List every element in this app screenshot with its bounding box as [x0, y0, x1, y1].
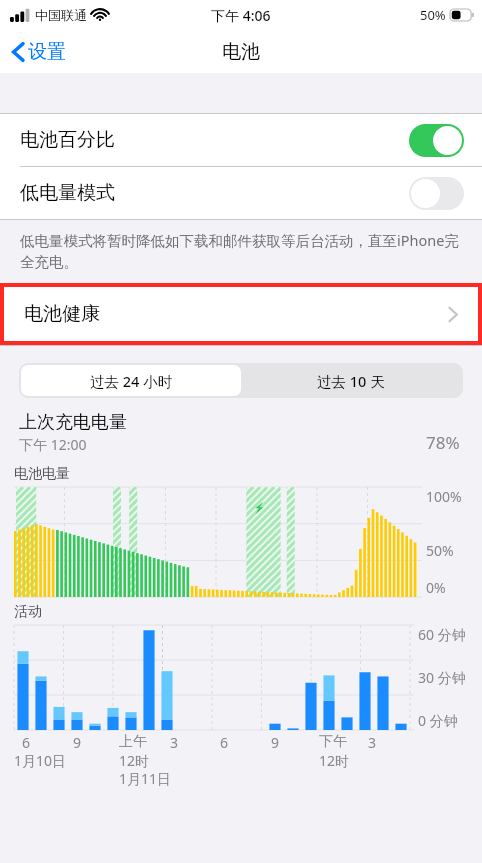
staticText: 低电量模式	[20, 181, 115, 205]
button[interactable]: 电池百分比	[0, 114, 482, 166]
staticText: 3	[368, 733, 377, 752]
staticText: 12时	[319, 751, 350, 770]
staticText: 下午 12:00	[19, 435, 87, 454]
button[interactable]: 低电量模式	[409, 177, 464, 210]
staticText: 9	[73, 733, 82, 752]
staticText: 中国联通	[35, 7, 87, 23]
staticText: 下午	[319, 733, 347, 751]
button[interactable]: 过去 10 天	[241, 365, 461, 396]
staticText: 60 分钟	[418, 625, 466, 644]
staticText: 12时	[119, 751, 150, 770]
staticText: 30 分钟	[418, 668, 466, 687]
staticText: 3	[170, 733, 179, 752]
staticText: 1月11日	[119, 769, 172, 788]
staticText: 50%	[426, 541, 454, 560]
button[interactable]: 过去 24 小时	[21, 365, 241, 396]
button[interactable]: 电池健康	[4, 287, 478, 341]
staticText: 78%	[426, 431, 460, 454]
staticText: 活动	[14, 603, 42, 621]
staticText: 1月10日	[14, 751, 67, 770]
staticText: 上次充电电量	[19, 411, 127, 434]
staticText: 6	[220, 733, 229, 752]
staticText: 过去 10 天	[317, 371, 385, 391]
staticText: 100%	[426, 487, 462, 506]
staticText: 0 分钟	[418, 711, 458, 730]
staticText: 设置	[28, 40, 66, 64]
button[interactable]: 设置	[8, 36, 70, 68]
staticText: 9	[271, 733, 280, 752]
staticText: 低电量模式将暂时降低如下载和邮件获取等后台活动，直至iPhone完全充电。	[20, 230, 460, 271]
staticText: 0%	[426, 578, 446, 597]
staticText: 电池百分比	[20, 128, 115, 152]
button[interactable]: 低电量模式	[0, 167, 482, 219]
staticText: 下午 4:06	[211, 6, 271, 25]
staticText: 电池	[222, 40, 260, 64]
staticText: 过去 24 小时	[90, 371, 173, 391]
staticText: 上午	[119, 733, 147, 751]
button[interactable]: 电池百分比	[409, 124, 464, 157]
staticText: 6	[22, 733, 31, 752]
staticText: 电池健康	[24, 302, 100, 326]
staticText: 电池电量	[14, 465, 70, 483]
staticText: 50%	[420, 6, 446, 24]
